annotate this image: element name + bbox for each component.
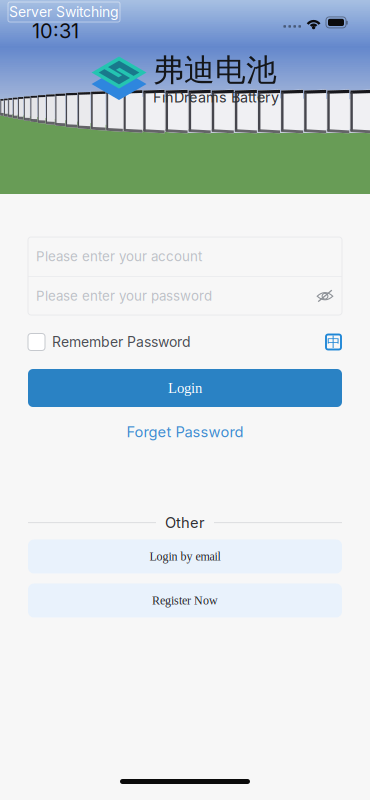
staticText: 弗迪电池 (153, 51, 277, 90)
staticText: FinDreams Battery (153, 89, 279, 106)
staticText: Server Switching (9, 3, 119, 20)
button[interactable]: Remember Password (28, 333, 191, 350)
staticText: Login by email (149, 550, 220, 563)
staticText: Forget Password (126, 423, 243, 441)
button[interactable]: Switch language (325, 333, 342, 350)
button[interactable]: Show password (316, 288, 334, 304)
staticText: Please enter your account (36, 248, 202, 264)
staticText: Please enter your password (36, 288, 212, 304)
button[interactable]: Login by email (28, 539, 342, 573)
staticText: Remember Password (52, 333, 191, 350)
button[interactable]: Register Now (28, 583, 342, 617)
staticText: Register Now (152, 594, 218, 607)
button[interactable]: Server Switching (8, 2, 120, 22)
staticText: 中 (327, 334, 340, 350)
staticText: 10:31 (32, 19, 79, 43)
button[interactable]: Forget Password (126, 418, 243, 446)
button[interactable]: Login (28, 369, 342, 407)
staticText: Login (168, 380, 202, 396)
staticText: Other (165, 514, 205, 531)
